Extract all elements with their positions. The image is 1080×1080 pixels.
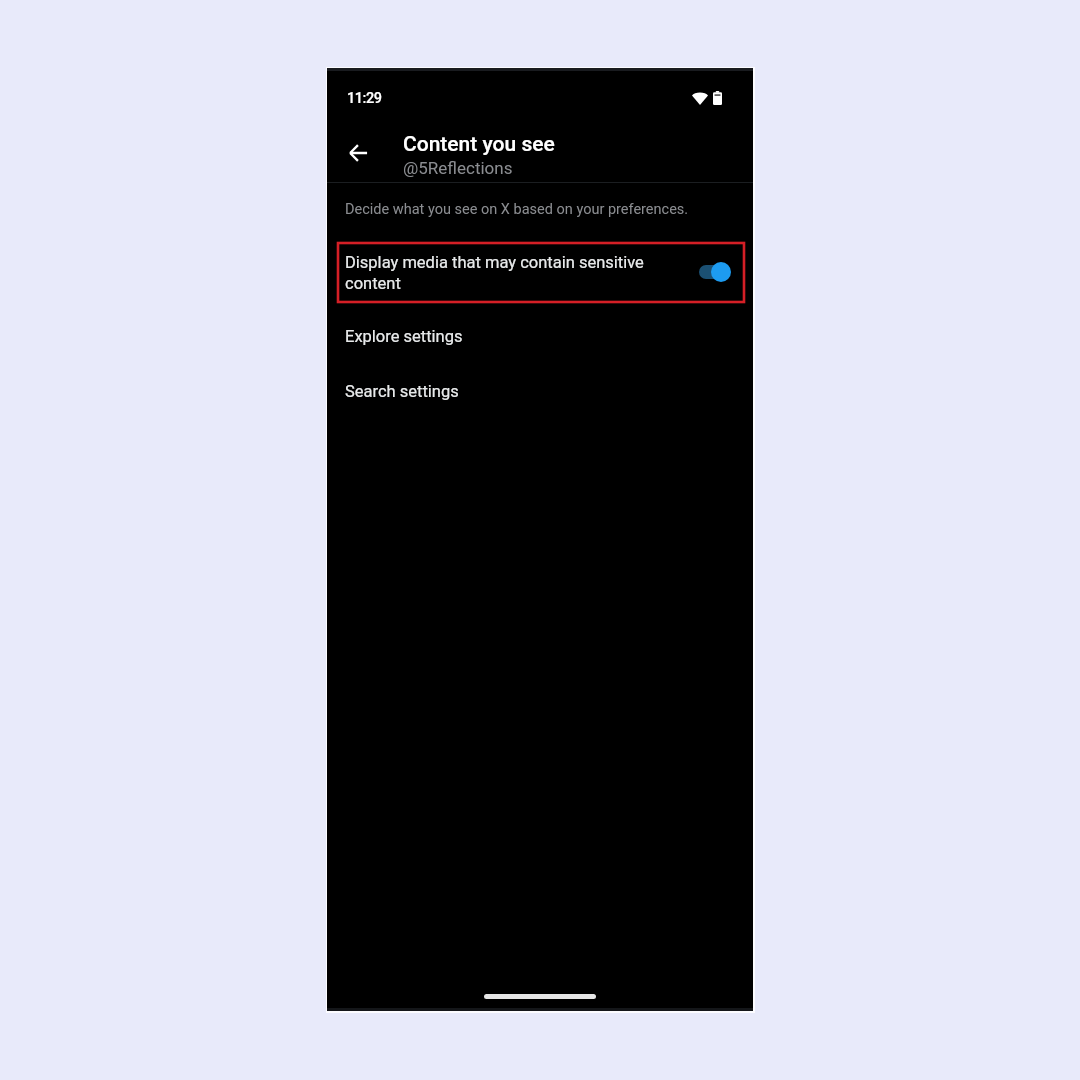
staticText: Search settings xyxy=(345,382,459,401)
button[interactable]: Search settings xyxy=(327,366,753,415)
staticText: Decide what you see on X based on your p… xyxy=(345,201,689,218)
button[interactable]: Explore settings xyxy=(327,311,753,360)
staticText: Display media that may contain sensitive… xyxy=(345,253,650,293)
staticText: Explore settings xyxy=(345,327,463,346)
button[interactable]: Display media that may contain sensitive… xyxy=(336,242,745,303)
button[interactable]: Back xyxy=(340,135,376,171)
staticText: 11:29 xyxy=(347,90,382,107)
staticText: Content you see xyxy=(403,132,555,157)
button[interactable]: Display sensitive media, on xyxy=(697,255,733,289)
staticText: @5Reflections xyxy=(403,158,513,178)
